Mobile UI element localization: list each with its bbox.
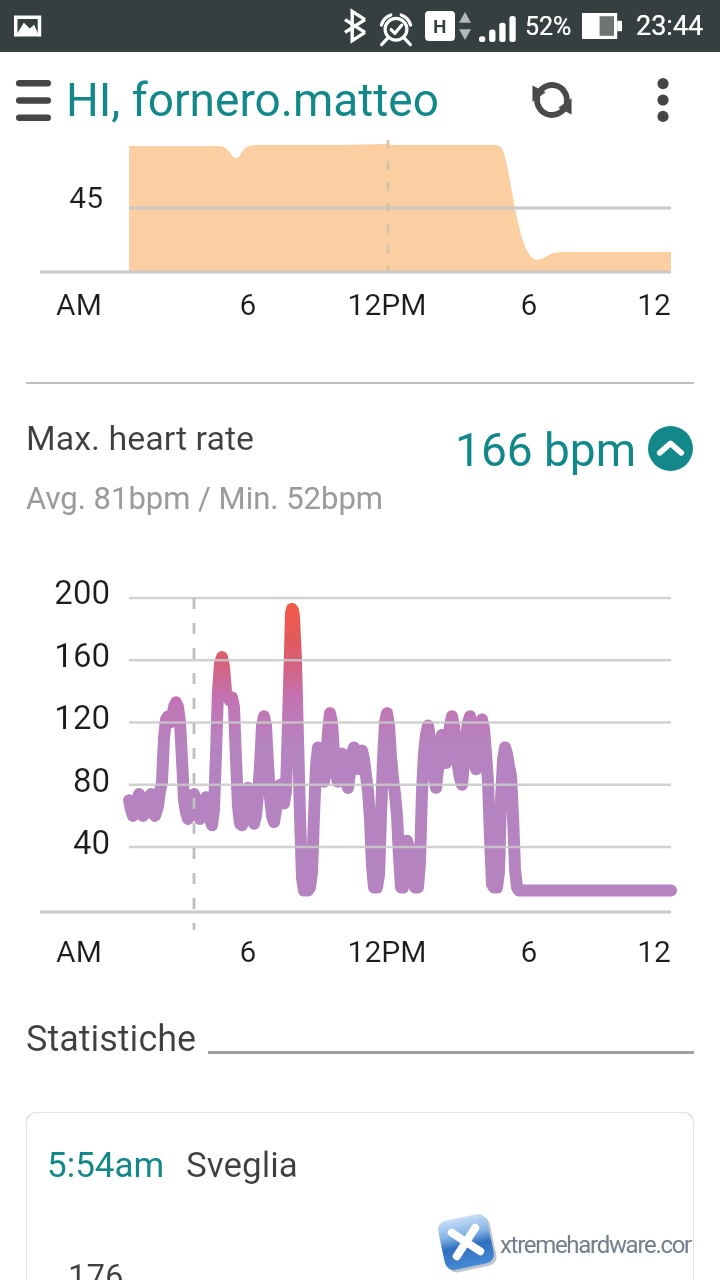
staticText: Statistiche: [26, 1018, 197, 1060]
button[interactable]: Refresh: [508, 52, 596, 148]
staticText: 12PM: [227, 934, 547, 969]
staticText: 80: [0, 761, 110, 800]
button[interactable]: 5:54am: [26, 1112, 694, 1280]
button[interactable]: More options: [628, 52, 698, 148]
staticText: 200: [0, 573, 110, 612]
button[interactable]: Max. heart rate: [0, 400, 720, 530]
staticText: 5:54am: [47, 1145, 165, 1186]
staticText: 160: [0, 636, 110, 675]
staticText: H: [433, 15, 447, 37]
staticText: 6: [369, 934, 689, 969]
staticText: HI, fornero.matteo: [66, 73, 439, 127]
staticText: AM: [0, 934, 239, 969]
staticText: Avg. 81bpm / Min. 52bpm: [26, 480, 383, 516]
staticText: 6: [88, 934, 408, 969]
staticText: 166 bpm: [316, 423, 636, 477]
staticText: 6: [88, 287, 408, 322]
staticText: 120: [0, 698, 110, 737]
staticText: 12: [494, 287, 720, 322]
staticText: 6: [369, 287, 689, 322]
staticText: Sveglia: [186, 1145, 298, 1186]
staticText: Max. heart rate: [26, 418, 255, 458]
staticText: 52%: [525, 12, 572, 41]
staticText: 40: [0, 823, 110, 862]
staticText: AM: [0, 287, 239, 322]
staticText: 23:44: [636, 10, 704, 42]
staticText: 12PM: [227, 287, 547, 322]
staticText: 45: [0, 180, 103, 215]
button[interactable]: Menu: [4, 66, 62, 134]
staticText: xtremehardware.com: [500, 1231, 692, 1259]
staticText: 176: [68, 1257, 124, 1280]
staticText: 12: [494, 934, 720, 969]
button[interactable]: Collapse: [648, 426, 693, 471]
